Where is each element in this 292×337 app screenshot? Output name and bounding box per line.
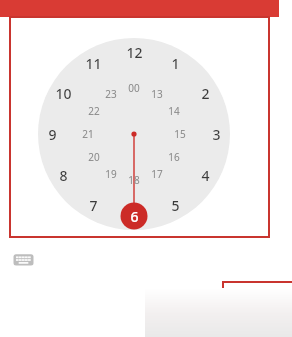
staticText: 1 bbox=[171, 54, 180, 73]
button[interactable]: 17 bbox=[146, 166, 168, 182]
staticText: 23 bbox=[105, 87, 117, 101]
button[interactable]: 3 bbox=[203, 124, 229, 144]
button[interactable]: 21 bbox=[77, 126, 99, 142]
button[interactable]: 5 bbox=[162, 195, 188, 215]
staticText: 3 bbox=[212, 125, 221, 144]
staticText: 17 bbox=[151, 167, 163, 181]
button[interactable]: 15 bbox=[169, 126, 191, 142]
button[interactable]: 19 bbox=[100, 166, 122, 182]
staticText: 9 bbox=[48, 125, 57, 144]
button[interactable]: 14 bbox=[163, 103, 185, 119]
button[interactable]: Switch to text input bbox=[13, 251, 34, 269]
staticText: 16 bbox=[168, 150, 180, 164]
staticText: 00 bbox=[128, 81, 140, 95]
staticText: 18 bbox=[128, 173, 140, 187]
button[interactable]: 22 bbox=[83, 103, 105, 119]
button[interactable]: 2 bbox=[192, 83, 218, 103]
button[interactable]: 00 bbox=[123, 80, 145, 96]
staticText: 6 bbox=[130, 207, 139, 226]
button[interactable]: 8 bbox=[50, 165, 76, 185]
staticText: 10 bbox=[55, 84, 72, 103]
staticText: 5 bbox=[171, 196, 180, 215]
button[interactable]: 20 bbox=[83, 149, 105, 165]
button[interactable]: 6 bbox=[121, 206, 147, 226]
staticText: 13 bbox=[151, 87, 163, 101]
staticText: 22 bbox=[88, 104, 100, 118]
staticText: 7 bbox=[89, 196, 98, 215]
staticText: 20 bbox=[88, 150, 100, 164]
button[interactable]: 1 bbox=[162, 53, 188, 73]
button[interactable]: 16 bbox=[163, 149, 185, 165]
button[interactable]: 11 bbox=[80, 53, 106, 73]
staticText: 12 bbox=[126, 43, 143, 62]
staticText: 21 bbox=[82, 127, 94, 141]
staticText: 14 bbox=[168, 104, 180, 118]
staticText: 11 bbox=[85, 54, 102, 73]
staticText: 4 bbox=[201, 166, 210, 185]
staticText: 8 bbox=[59, 166, 68, 185]
button[interactable] bbox=[222, 281, 292, 337]
button[interactable]: 13 bbox=[146, 86, 168, 102]
staticText: 19 bbox=[105, 167, 117, 181]
button[interactable]: 1 bbox=[9, 16, 270, 238]
button[interactable]: 12 bbox=[121, 42, 147, 62]
button[interactable]: 10 bbox=[50, 83, 76, 103]
staticText: 2 bbox=[201, 84, 210, 103]
staticText: 15 bbox=[174, 127, 186, 141]
button[interactable]: 4 bbox=[192, 165, 218, 185]
button[interactable]: 23 bbox=[100, 86, 122, 102]
button[interactable]: 7 bbox=[80, 195, 106, 215]
button[interactable]: 18 bbox=[123, 172, 145, 188]
button[interactable]: 9 bbox=[39, 124, 65, 144]
